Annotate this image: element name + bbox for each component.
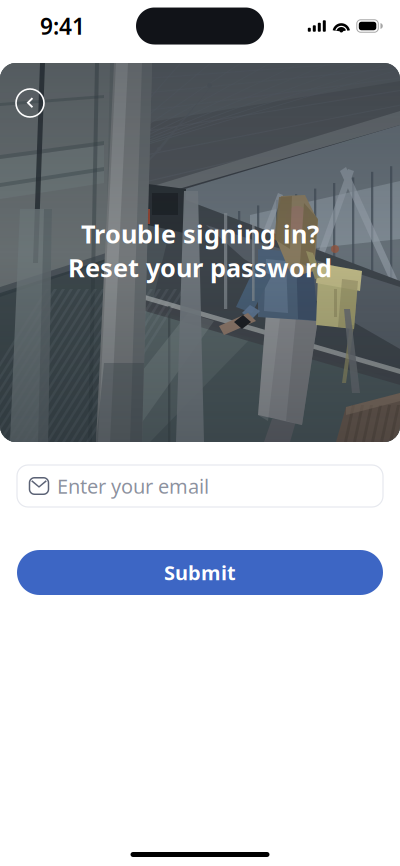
- button[interactable]: Back: [8, 81, 52, 125]
- staticText: Reset your password: [68, 250, 332, 284]
- staticText: Submit: [164, 559, 236, 586]
- button[interactable]: Submit: [17, 550, 383, 595]
- button[interactable]: Enter your email: [17, 465, 383, 507]
- staticText: Enter your email: [57, 473, 209, 499]
- staticText: 9:41: [40, 11, 85, 41]
- staticText: Trouble signing in?: [81, 217, 319, 250]
